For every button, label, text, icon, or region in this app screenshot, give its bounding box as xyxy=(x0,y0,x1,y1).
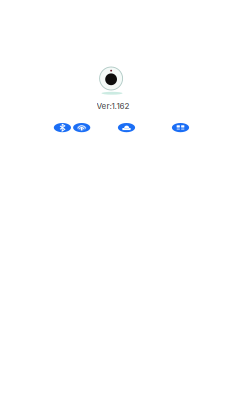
button[interactable]: Memory card xyxy=(172,123,189,132)
button[interactable]: Cloud storage xyxy=(118,123,135,132)
staticText: Ver:1.162 xyxy=(96,101,129,111)
button[interactable]: Bluetooth xyxy=(54,123,71,132)
button[interactable]: Wi-Fi xyxy=(73,123,90,132)
